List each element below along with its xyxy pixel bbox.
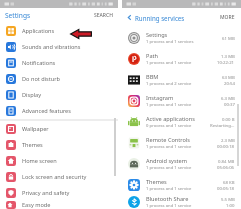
staticText: Wallpaper [22, 125, 49, 133]
staticText: Lock screen and security [22, 173, 87, 181]
staticText: Home screen [22, 157, 57, 165]
staticText: Running services [135, 14, 185, 22]
button[interactable]: Display [0, 87, 118, 103]
staticText: MORE [220, 14, 235, 21]
button[interactable]: Remote Controls [122, 132, 241, 153]
staticText: 6.3 MB [221, 95, 235, 101]
staticText: 1 process and 1 service [146, 186, 192, 192]
staticText: 00:05:18 [217, 185, 235, 191]
button[interactable]: Themes [0, 137, 118, 153]
button[interactable]: Settings [122, 27, 241, 48]
staticText: Themes [22, 141, 43, 149]
staticText: 61 MB [222, 35, 235, 41]
staticText: 00:37 [224, 101, 235, 107]
button[interactable]: BBM [122, 69, 241, 90]
staticText: 1 process and 1 service [146, 165, 192, 171]
staticText: Themes [146, 178, 167, 186]
button[interactable]: Instagram [122, 90, 241, 111]
staticText: Active applications [146, 115, 195, 123]
button[interactable]: Settings [0, 8, 118, 23]
staticText: Settings [5, 11, 31, 20]
button[interactable]: Easy mode [0, 201, 118, 209]
staticText: 5.5 MB [221, 196, 235, 202]
staticText: BBM [146, 73, 159, 81]
button[interactable]: Lock screen and security [0, 169, 118, 185]
staticText: Display [22, 91, 42, 99]
staticText: 1.3 MB [221, 53, 235, 59]
staticText: Restarting... [210, 122, 235, 128]
staticText: SEARCH [94, 12, 113, 19]
staticText: Bluetooth Share [146, 195, 189, 203]
staticText: 1:00 [226, 202, 235, 208]
staticText: Remote Controls [146, 136, 190, 144]
staticText: Path [146, 52, 158, 60]
staticText: Privacy and safety [22, 189, 70, 197]
staticText: Notifications [22, 59, 56, 67]
button[interactable]: Path [122, 48, 241, 69]
staticText: Sounds and vibrations [22, 43, 81, 51]
button[interactable]: MORE [220, 14, 241, 21]
button[interactable]: SEARCH [94, 12, 118, 19]
staticText: Android system [146, 157, 188, 165]
staticText: Advanced features [22, 107, 71, 115]
staticText: 00:00:18 [217, 143, 235, 149]
staticText: 20:54 [224, 80, 235, 86]
staticText: 1 process and 1 service [146, 203, 192, 209]
button[interactable]: Home screen [0, 153, 118, 169]
staticText: 05:06:06 [217, 164, 235, 170]
staticText: 1 process and 1 service [146, 144, 192, 150]
staticText: 1 process and 2 service [146, 81, 192, 87]
staticText: 2.3 MB [221, 137, 235, 143]
button[interactable]: Themes [122, 174, 241, 195]
staticText: 1 process and 1 service [146, 102, 192, 108]
button[interactable]: Active applications [122, 111, 241, 132]
staticText: Applications [22, 27, 55, 35]
staticText: 0 process and 1 service [146, 123, 192, 129]
button[interactable]: Bluetooth Share [122, 195, 241, 209]
staticText: 68 KB [223, 179, 235, 185]
staticText: 0.00 B [222, 116, 235, 122]
staticText: 1 process and 1 services [146, 39, 194, 45]
button[interactable]: Advanced features [0, 103, 118, 119]
button[interactable]: Sounds and vibrations [0, 39, 118, 55]
staticText: 1 process and 1 service [146, 60, 192, 66]
staticText: Instagram [146, 94, 174, 102]
button[interactable]: Android system [122, 153, 241, 174]
button[interactable]: Applications [0, 23, 118, 39]
staticText: 63 MB [222, 74, 235, 80]
staticText: Do not disturb [22, 75, 61, 83]
button[interactable]: Wallpaper [0, 121, 118, 137]
button[interactable]: Back [124, 12, 135, 23]
button[interactable]: Notifications [0, 55, 118, 71]
button[interactable]: Privacy and safety [0, 185, 118, 201]
button[interactable]: Do not disturb [0, 71, 118, 87]
staticText: 10:22:21 [217, 59, 235, 65]
staticText: Settings [146, 31, 168, 39]
staticText: Easy mode [22, 201, 51, 209]
staticText: 0.84 MB [218, 158, 235, 164]
